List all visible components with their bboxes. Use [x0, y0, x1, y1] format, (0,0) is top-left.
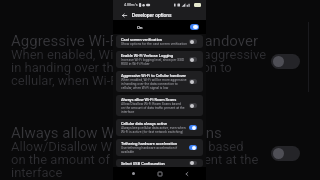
staticText: When enabled, Wi-Fi will be more aggress…	[11, 47, 267, 62]
staticText: Cellular data always active	[121, 121, 168, 126]
staticText: available	[121, 150, 135, 154]
staticText: Allow/Disallow Wi-Fi Roam Scans based	[121, 102, 181, 106]
staticText: Aggressive Wi-Fi to Cellular handover	[11, 32, 259, 50]
button[interactable]: Aggressive Wi-Fi to Cellular handover	[121, 73, 197, 90]
staticText: When enabled, Wi-Fi will be more aggress…	[121, 78, 187, 82]
button[interactable]: Select USB Configuration	[121, 161, 197, 165]
button[interactable]: Cellular data always active	[121, 121, 197, 134]
staticText: Enable Wi-Fi Verbose Logging	[121, 53, 173, 58]
staticText: Increase Wi-Fi logging level, show per S…	[121, 58, 185, 62]
button[interactable]: Cast screen verification	[121, 37, 197, 46]
staticText: Always allow Wi-Fi Roam Scans	[11, 124, 222, 142]
button[interactable]: Tethering hardware acceleration	[121, 141, 197, 154]
staticText: cellular, when Wi-Fi signal is low	[121, 86, 169, 90]
button[interactable]: Always allow Wi-Fi Roam Scans	[121, 97, 197, 114]
staticText: on the amount of data traffic present at…	[11, 152, 259, 167]
staticText: in handing over the data connection to	[11, 60, 232, 75]
button[interactable]: Back	[180, 167, 193, 180]
staticText: interface	[121, 110, 135, 114]
staticText: Wi-Fi is active (for fast network switch…	[121, 130, 184, 134]
button[interactable]: Home	[127, 167, 140, 180]
button[interactable]: Back	[120, 11, 128, 19]
button[interactable]: Enable Wi-Fi Verbose Logging	[121, 53, 197, 66]
staticText: Allow/Disallow Wi-Fi Roam Scans based	[11, 139, 244, 154]
staticText: on the amount of data traffic present at…	[121, 106, 185, 110]
staticText: Select USB Configuration	[121, 161, 165, 165]
staticText: Tethering hardware acceleration	[121, 141, 178, 146]
staticText: interface	[11, 165, 63, 180]
staticText: Cast screen verification	[121, 37, 162, 42]
staticText: cellular, when Wi-Fi signal is low	[11, 73, 196, 88]
staticText: in handing over the data connection to	[121, 82, 178, 86]
staticText: Always keep cellular data active, even w…	[121, 126, 186, 130]
staticText: Show options for the cast screen verific…	[121, 42, 187, 46]
staticText: On	[137, 25, 143, 30]
staticText: Developer options	[132, 12, 172, 18]
staticText: Always allow Wi-Fi Roam Scans	[121, 97, 177, 102]
staticText: Use tethering hardware acceleration if	[121, 146, 178, 150]
button[interactable]: Recent apps	[153, 167, 166, 180]
staticText: 4.88m/s	[124, 3, 138, 7]
button[interactable]: On	[137, 20, 199, 34]
staticText: Aggressive Wi-Fi to Cellular handover	[121, 73, 186, 78]
staticText: RSSI in Wi-Fi Picker	[121, 62, 150, 66]
